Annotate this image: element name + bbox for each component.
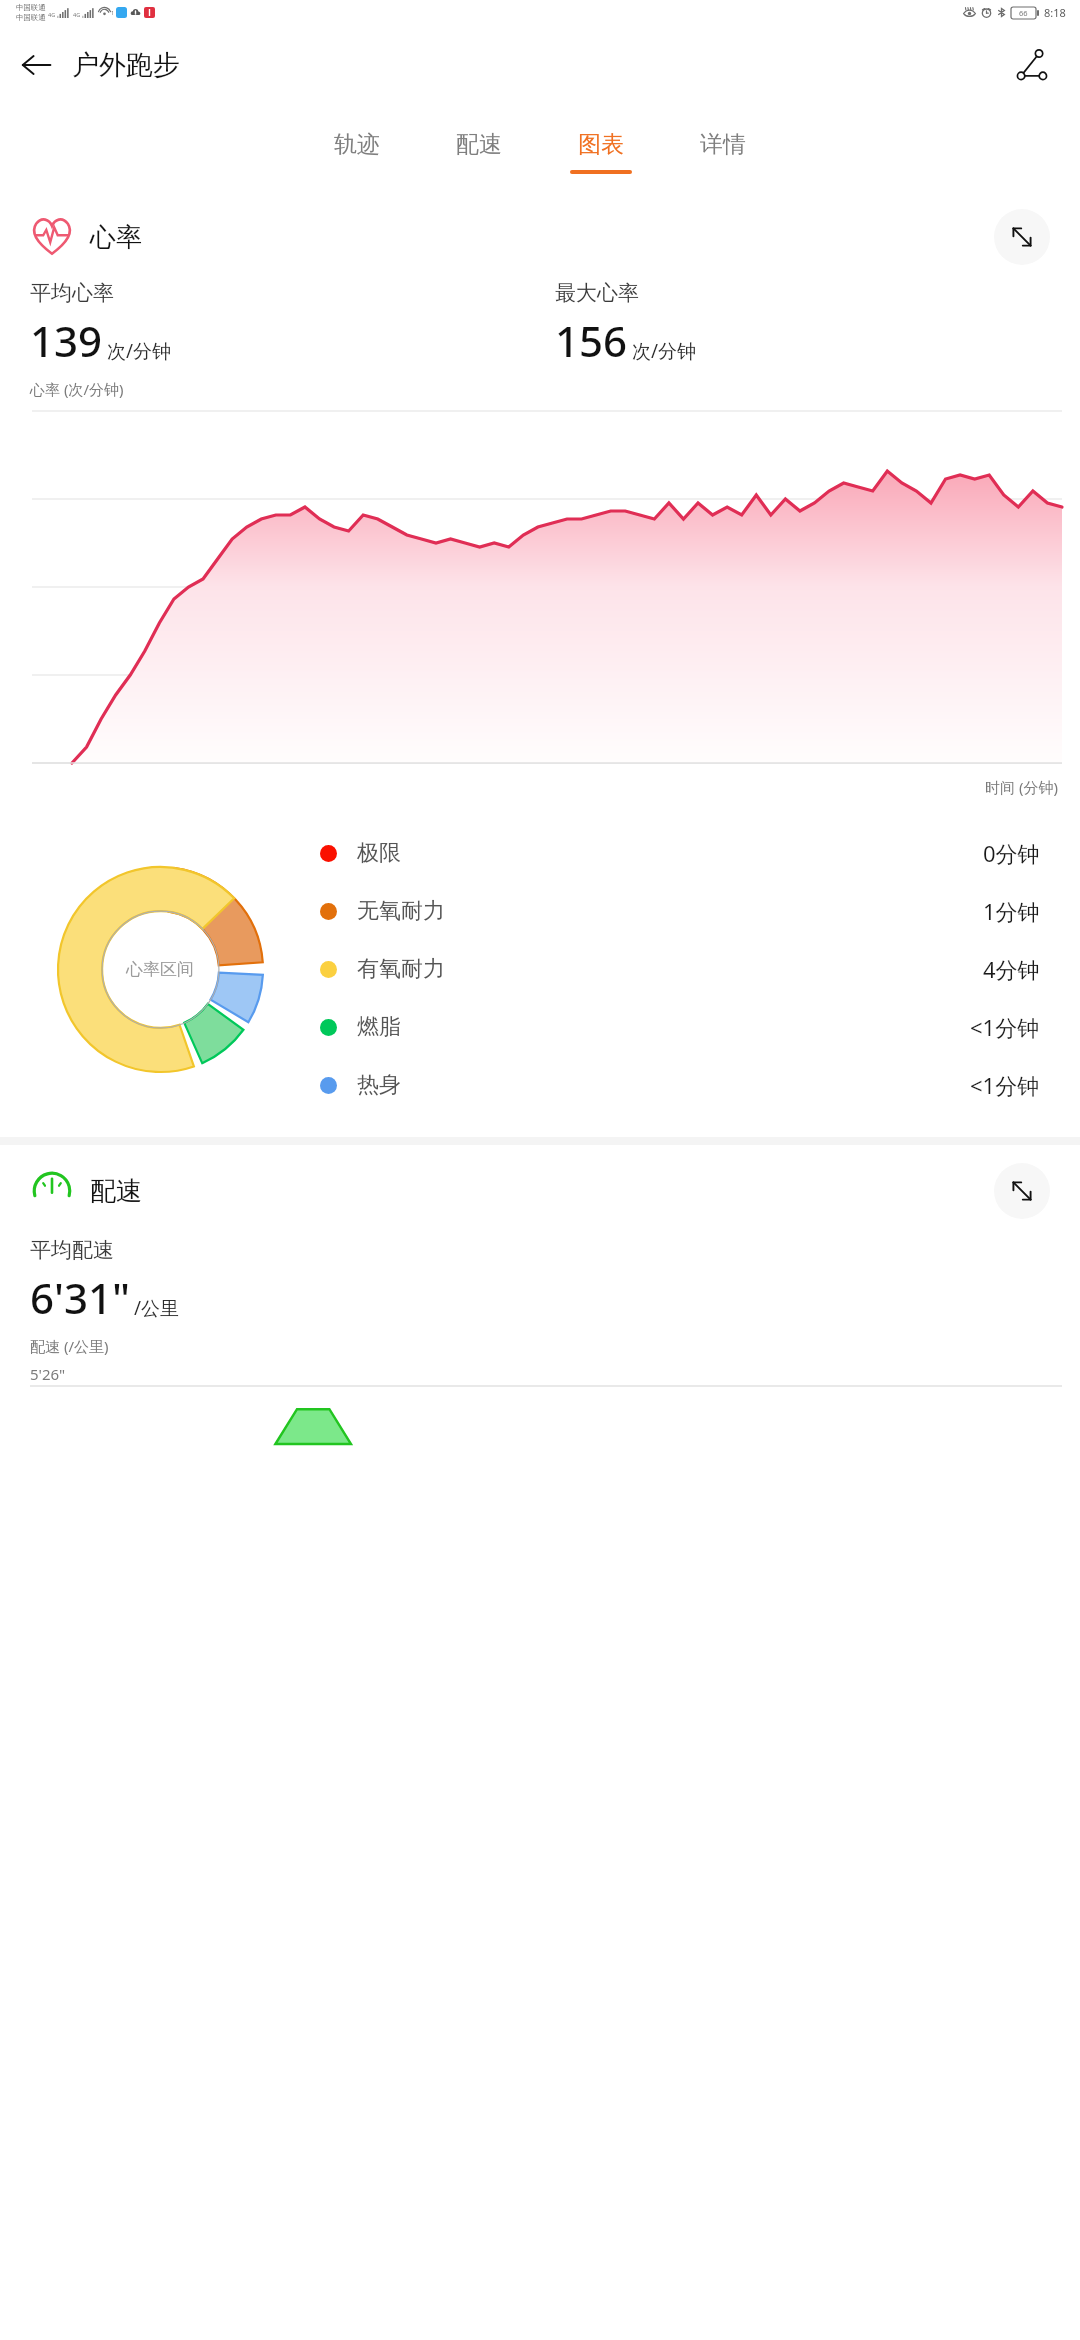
staticText: 平均心率	[30, 280, 114, 306]
staticText: 燃脂	[357, 1013, 970, 1041]
button[interactable]: 轨迹	[296, 106, 418, 198]
staticText: 时间 (分钟)	[985, 777, 1058, 797]
staticText: 最大心率	[555, 280, 639, 306]
staticText: 4G	[73, 11, 81, 18]
staticText: 户外跑步	[72, 48, 180, 82]
staticText: 1	[111, 9, 115, 16]
staticText: 有氧耐力	[357, 955, 983, 983]
staticText: 5'26"	[30, 1364, 66, 1384]
staticText: 66	[1019, 8, 1028, 18]
staticText: 配速	[90, 1175, 142, 1208]
button[interactable]: 极限	[320, 824, 1040, 882]
staticText: 156	[555, 312, 628, 369]
staticText: 心率	[90, 221, 142, 254]
button[interactable]: Share	[1002, 35, 1062, 95]
staticText: 次/分钟	[107, 338, 172, 364]
button[interactable]: 详情	[662, 106, 784, 198]
button[interactable]: Back	[0, 29, 72, 101]
staticText: 极限	[357, 839, 983, 867]
staticText: 次/分钟	[632, 338, 697, 364]
staticText: <1分钟	[970, 1070, 1040, 1100]
button[interactable]: 图表	[540, 106, 662, 198]
staticText: 配速 (/公里)	[30, 1336, 109, 1356]
button[interactable]: Expand	[994, 1163, 1050, 1219]
staticText: 6'31"	[30, 1269, 131, 1326]
staticText: 1分钟	[983, 896, 1040, 926]
staticText: 平均配速	[30, 1237, 114, 1263]
staticText: 0分钟	[983, 838, 1040, 868]
staticText: 心率 (次/分钟)	[30, 379, 124, 399]
staticText: 139	[30, 312, 103, 369]
staticText: 轨迹	[334, 130, 380, 159]
staticText: 图表	[578, 130, 624, 159]
button[interactable]: 配速	[418, 106, 540, 198]
staticText: 中国联通	[16, 13, 46, 22]
staticText: 8:18	[1044, 5, 1066, 20]
staticText: <1分钟	[970, 1012, 1040, 1042]
staticText: 心率区间	[126, 959, 194, 980]
staticText: 配速	[456, 130, 502, 159]
button[interactable]: 无氧耐力	[320, 882, 1040, 940]
staticText: 热身	[357, 1071, 970, 1099]
button[interactable]: 热身	[320, 1056, 1040, 1114]
staticText: 中国联通	[16, 3, 46, 12]
button[interactable]: 有氧耐力	[320, 940, 1040, 998]
staticText: /公里	[134, 1295, 180, 1321]
button[interactable]: Expand	[994, 209, 1050, 265]
staticText: 无氧耐力	[357, 897, 983, 925]
button[interactable]: 燃脂	[320, 998, 1040, 1056]
staticText: 4G	[48, 11, 56, 18]
staticText: 详情	[700, 130, 746, 159]
staticText: 4分钟	[983, 954, 1040, 984]
